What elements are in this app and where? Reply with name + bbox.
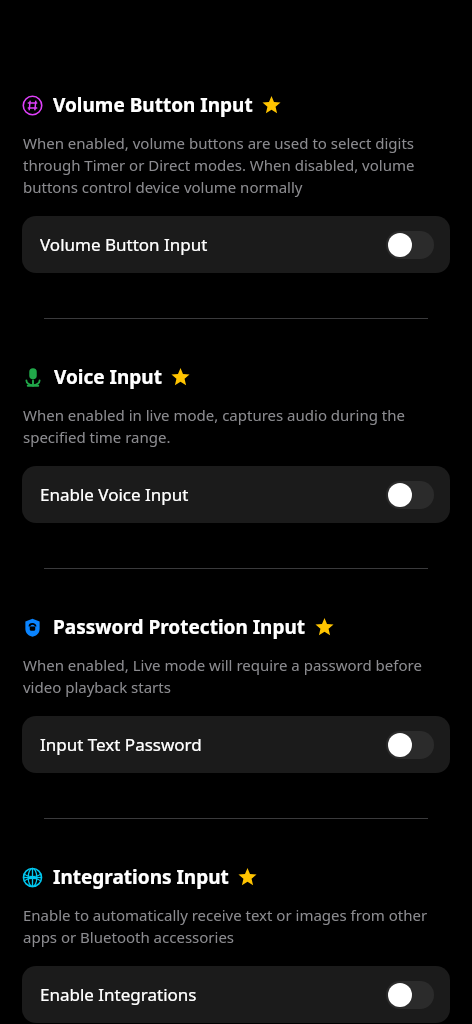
staticText: Enable Integrations: [40, 983, 386, 1006]
staticText: Enable Voice Input: [40, 483, 386, 506]
staticText: Integrations Input: [53, 864, 229, 890]
staticText: Enable to automatically receive text or …: [23, 905, 448, 948]
button[interactable]: Toggle: [386, 231, 434, 259]
button[interactable]: Toggle: [386, 481, 434, 509]
staticText: When enabled, volume buttons are used to…: [23, 133, 448, 198]
staticText: Password Protection Input: [53, 614, 306, 640]
staticText: Input Text Password: [40, 733, 386, 756]
staticText: Volume Button Input: [53, 92, 253, 118]
button[interactable]: Toggle: [386, 731, 434, 759]
staticText: When enabled in live mode, captures audi…: [23, 405, 448, 448]
button[interactable]: Toggle: [386, 981, 434, 1009]
staticText: Voice Input: [54, 364, 162, 390]
button[interactable]: Volume Button Input: [22, 216, 450, 273]
staticText: Volume Button Input: [40, 233, 386, 256]
button[interactable]: Input Text Password: [22, 716, 450, 773]
staticText: When enabled, Live mode will require a p…: [23, 655, 448, 698]
button[interactable]: Enable Voice Input: [22, 466, 450, 523]
button[interactable]: Enable Integrations: [22, 966, 450, 1023]
